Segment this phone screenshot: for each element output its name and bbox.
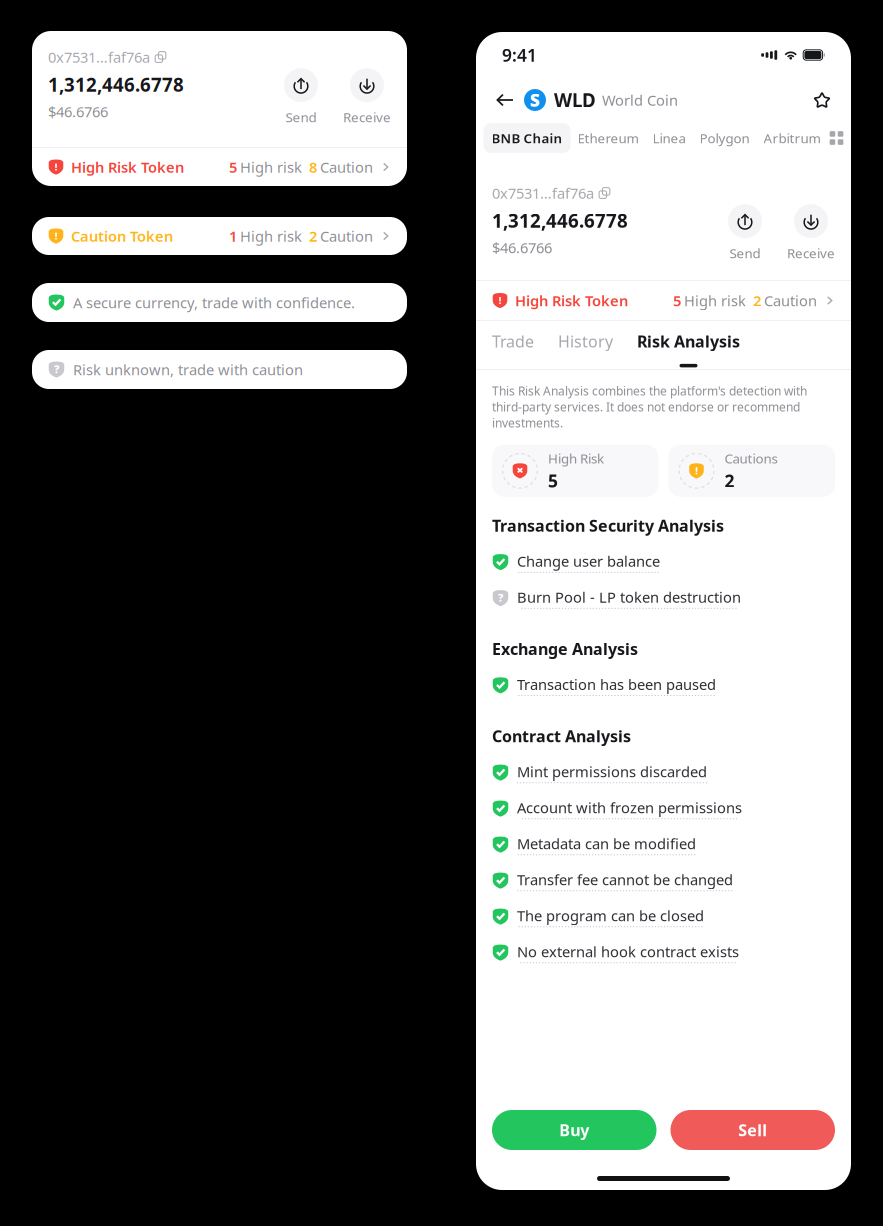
staticText: The program can be closed [517,906,704,925]
button[interactable]: History [558,321,613,369]
staticText: 2 [309,226,317,246]
staticText: Transaction Security Analysis [492,515,724,536]
staticText: Caution Token [71,226,173,246]
staticText: Mint permissions discarded [517,762,707,781]
button[interactable]: Sell [670,1110,835,1150]
staticText: 1,312,446.6778 [492,208,628,233]
button[interactable]: Caution Token [32,217,407,255]
staticText: Receive [787,244,835,262]
staticText: Exchange Analysis [492,638,638,659]
staticText: 2 [724,469,734,492]
staticText: 1 [229,226,237,246]
button[interactable]: Favorite [809,83,835,117]
button[interactable]: BNB Chain [483,123,570,153]
staticText: High Risk Token [71,157,184,177]
staticText: No external hook contract exists [517,942,739,961]
staticText: Change user balance [517,551,660,571]
staticText: WLD [554,88,596,112]
button[interactable]: High Risk [492,445,658,497]
staticText: S [530,88,540,111]
button[interactable]: High Risk Token [476,281,851,320]
staticText: 1,312,446.6778 [48,72,184,97]
button[interactable]: Polygon [692,123,756,153]
button[interactable]: All networks [829,131,843,145]
staticText: ? [498,590,503,605]
staticText: Send [285,108,316,126]
button[interactable]: Send [728,204,762,262]
staticText: High risk [684,291,746,310]
button[interactable]: Ethereum [570,123,645,153]
staticText: High risk [240,226,302,246]
staticText: 0x7531…faf76a [48,47,150,67]
staticText: Risk Analysis [637,331,740,352]
button[interactable]: Receive [343,68,391,126]
button[interactable]: Send [284,68,318,126]
staticText: Caution [320,226,373,246]
staticText: Contract Analysis [492,725,631,746]
staticText: Sell [738,1119,767,1141]
button[interactable]: Back [492,83,518,117]
staticText: Transfer fee cannot be changed [517,870,733,889]
staticText: High Risk [548,449,604,467]
staticText: 0x7531…faf76a [492,183,594,203]
staticText: Send [729,244,760,262]
staticText: Transaction has been paused [517,675,716,694]
staticText: 8 [309,157,317,177]
staticText: $46.6766 [492,238,552,257]
staticText: High risk [240,157,302,177]
staticText: Receive [343,108,391,126]
button[interactable]: Risk Analysis [637,321,740,369]
staticText: Linea [652,129,685,147]
staticText: Buy [559,1119,589,1141]
staticText: 2 [753,291,761,310]
staticText: 5 [548,469,558,492]
staticText: Burn Pool - LP token destruction [517,587,741,607]
staticText: 5 [229,157,237,177]
button[interactable]: Cautions [668,445,835,497]
staticText: Polygon [699,129,749,147]
button[interactable]: 0x7531…faf76a [492,184,835,202]
button[interactable]: Arbitrum [756,123,827,153]
button[interactable]: ? [32,350,407,389]
staticText: Caution [320,157,373,177]
staticText: Metadata can be modified [517,834,696,853]
button[interactable]: Buy [492,1110,656,1150]
button[interactable]: Trade [492,321,534,369]
staticText: 5 [673,291,681,310]
staticText: World Coin [602,90,678,110]
staticText: Cautions [724,449,777,467]
staticText: This Risk Analysis combines the platform… [492,383,807,431]
button[interactable]: 0x7531…faf76a [48,48,391,66]
staticText: A secure currency, trade with confidence… [73,293,355,312]
staticText: Caution [764,291,817,310]
staticText: $46.6766 [48,102,108,121]
button[interactable]: A secure currency, trade with confidence… [32,283,407,322]
staticText: 9:41 [502,43,537,66]
staticText: History [558,331,613,352]
button[interactable]: High Risk Token [32,148,407,186]
button[interactable]: Receive [787,204,835,262]
button[interactable]: Linea [645,123,692,153]
staticText: Account with frozen permissions [517,798,742,817]
staticText: BNB Chain [491,129,562,147]
staticText: Ethereum [577,129,638,147]
staticText: ? [54,362,59,376]
staticText: High Risk Token [515,291,628,310]
staticText: Risk unknown, trade with caution [73,360,303,379]
staticText: Trade [492,331,534,352]
staticText: Arbitrum [763,129,820,147]
